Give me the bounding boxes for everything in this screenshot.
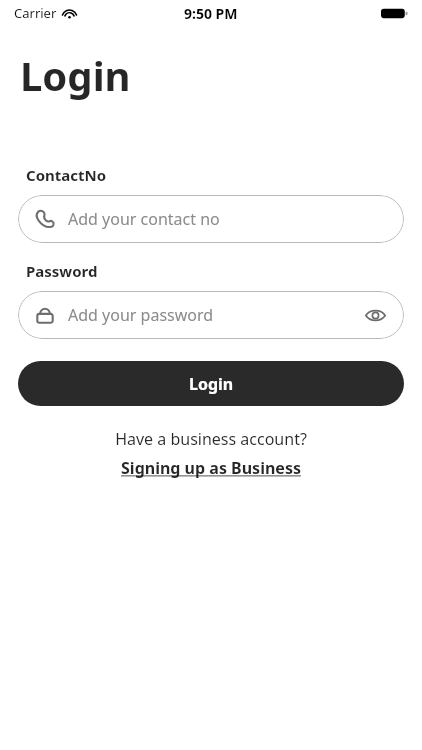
button[interactable]: Show password: [362, 302, 388, 328]
button[interactable]: Signing up as Business: [119, 456, 303, 480]
button[interactable]: Phone: [18, 195, 404, 243]
staticText: Add your password: [68, 304, 362, 326]
staticText: Add your contact no: [68, 208, 388, 230]
staticText: ContactNo: [26, 165, 107, 185]
staticText: Signing up as Business: [121, 457, 301, 479]
staticText: Have a business account?: [115, 428, 307, 450]
button[interactable]: Password: [18, 291, 404, 339]
staticText: Carrier: [14, 4, 57, 22]
button[interactable]: Login: [18, 361, 404, 406]
staticText: 9:50 PM: [184, 4, 238, 23]
other: Phone: [34, 208, 56, 230]
other: Password: [34, 304, 56, 326]
staticText: Password: [26, 261, 98, 281]
staticText: Login: [189, 373, 234, 395]
staticText: Login: [20, 48, 131, 102]
